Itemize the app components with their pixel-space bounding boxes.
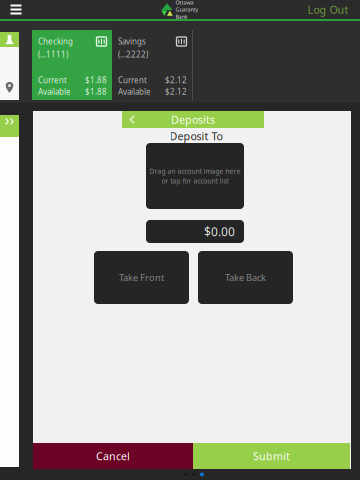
staticText: (...1111) bbox=[38, 49, 68, 60]
staticText: Current bbox=[118, 75, 147, 85]
staticText: Available bbox=[38, 86, 71, 97]
staticText: Drag an account image here bbox=[149, 167, 240, 175]
staticText: Available bbox=[118, 86, 151, 97]
staticText: Deposit To bbox=[169, 129, 222, 143]
button[interactable]: Submit bbox=[193, 443, 350, 469]
staticText: $2.12 bbox=[165, 86, 187, 97]
staticText: Current bbox=[38, 75, 67, 85]
staticText: Savings bbox=[118, 36, 146, 47]
staticText: Take Back bbox=[225, 271, 266, 284]
staticText: Deposits bbox=[171, 112, 215, 127]
staticText: Log Out bbox=[307, 2, 348, 17]
button[interactable]: Savings bbox=[112, 30, 192, 100]
staticText: $1.88 bbox=[85, 86, 107, 97]
staticText: $1.88 bbox=[85, 75, 107, 85]
staticText: Guaranty bbox=[175, 6, 198, 13]
button[interactable]: Drag an account image here bbox=[146, 143, 244, 209]
staticText: Bank bbox=[175, 13, 187, 20]
button[interactable]: Take Front bbox=[94, 251, 189, 304]
button[interactable]: Menu bbox=[0, 0, 32, 19]
button[interactable]: Expand menu bbox=[0, 115, 19, 137]
staticText: $2.12 bbox=[165, 75, 187, 85]
button[interactable]: Profile bbox=[0, 32, 19, 47]
staticText: Take Front bbox=[119, 271, 164, 284]
button[interactable]: $0.00 bbox=[146, 220, 244, 243]
staticText: Submit bbox=[253, 449, 290, 463]
staticText: Cancel bbox=[96, 449, 130, 463]
button[interactable]: Cancel bbox=[33, 443, 193, 469]
button[interactable]: Back bbox=[122, 111, 142, 128]
button[interactable]: Take Back bbox=[198, 251, 293, 304]
staticText: or tap for account list bbox=[161, 176, 228, 185]
staticText: Checking bbox=[38, 36, 73, 47]
staticText: (...2222) bbox=[118, 49, 148, 60]
button[interactable]: Checking bbox=[32, 30, 112, 100]
button[interactable]: Log Out bbox=[304, 0, 352, 19]
button[interactable]: Locations bbox=[0, 47, 19, 100]
staticText: $0.00 bbox=[204, 223, 235, 239]
staticText: Ottawa bbox=[175, 0, 193, 6]
